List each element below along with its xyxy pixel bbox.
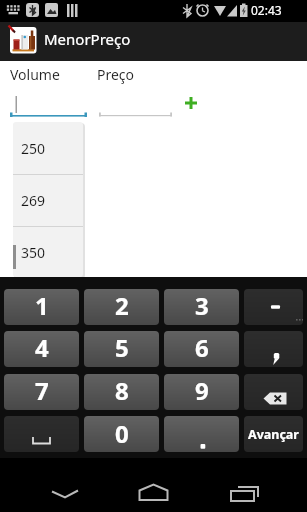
button[interactable] — [244, 374, 303, 410]
button[interactable]: 350 — [13, 226, 83, 277]
staticText: MenorPreço — [44, 29, 131, 49]
button[interactable]: MenorPreço — [0, 22, 307, 61]
button[interactable]: 5 — [84, 331, 159, 367]
staticText: 269 — [21, 191, 46, 210]
button[interactable] — [131, 472, 176, 498]
button[interactable]: 0 — [84, 416, 159, 452]
button[interactable]: 8 — [84, 374, 159, 410]
button[interactable]: 6 — [164, 331, 239, 367]
staticText: 9 — [195, 374, 209, 407]
button[interactable] — [4, 416, 79, 452]
button[interactable] — [244, 289, 303, 325]
button[interactable] — [40, 472, 86, 498]
button[interactable]: 9 — [164, 374, 239, 410]
staticText: Preço — [97, 65, 135, 84]
staticText: 5 — [115, 331, 129, 364]
button[interactable] — [164, 416, 239, 452]
button[interactable] — [222, 472, 266, 498]
button[interactable]: 2 — [84, 289, 159, 325]
staticText: 6 — [195, 331, 209, 364]
staticText: 2 — [115, 289, 129, 322]
staticText: 3 — [195, 289, 209, 322]
button[interactable]: 269 — [13, 174, 83, 226]
staticText: Volume — [10, 65, 60, 84]
button[interactable] — [244, 331, 303, 367]
staticText: 7 — [35, 374, 49, 407]
staticText: 1 — [35, 289, 49, 322]
staticText: 250 — [21, 139, 46, 158]
button[interactable]: Avançar — [244, 416, 303, 452]
staticText: 0 — [115, 417, 129, 450]
staticText: Avançar — [248, 426, 299, 443]
staticText: 350 — [21, 243, 46, 262]
button[interactable]: 7 — [4, 374, 79, 410]
button[interactable]: 4 — [4, 331, 79, 367]
button[interactable] — [99, 90, 172, 118]
staticText: 4 — [35, 331, 49, 364]
button[interactable]: 250 — [13, 122, 83, 174]
button[interactable]: 1 — [4, 289, 79, 325]
button[interactable] — [10, 90, 87, 118]
button[interactable]: 3 — [164, 289, 239, 325]
button[interactable] — [180, 92, 202, 114]
staticText: 8 — [115, 374, 129, 407]
staticText: 02:43 — [251, 2, 282, 18]
